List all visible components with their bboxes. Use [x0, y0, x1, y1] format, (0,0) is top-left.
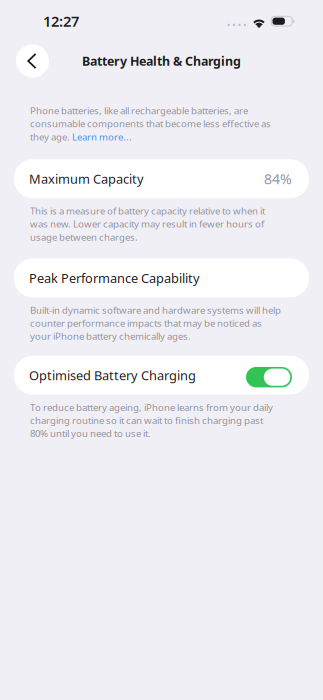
staticText: Maximum Capacity [29, 170, 144, 187]
button[interactable]: Optimised Battery Charging [14, 356, 309, 395]
staticText: This is a measure of battery capacity re… [30, 204, 265, 243]
staticText: Phone batteries, like all rechargeable b… [30, 104, 271, 143]
staticText: 12:27 [43, 11, 79, 31]
button[interactable]: Back [16, 44, 49, 77]
staticText: Battery Health & Charging [82, 53, 241, 69]
staticText: Peak Performance Capability [29, 269, 200, 287]
button[interactable]: Maximum Capacity [14, 159, 309, 198]
button[interactable]: Peak Performance Capability [14, 258, 309, 297]
staticText: Optimised Battery Charging [29, 366, 196, 384]
staticText: To reduce battery ageing, iPhone learns … [30, 401, 273, 440]
staticText: Built-in dynamic software and hardware s… [30, 303, 281, 343]
staticText: 84% [264, 169, 292, 188]
